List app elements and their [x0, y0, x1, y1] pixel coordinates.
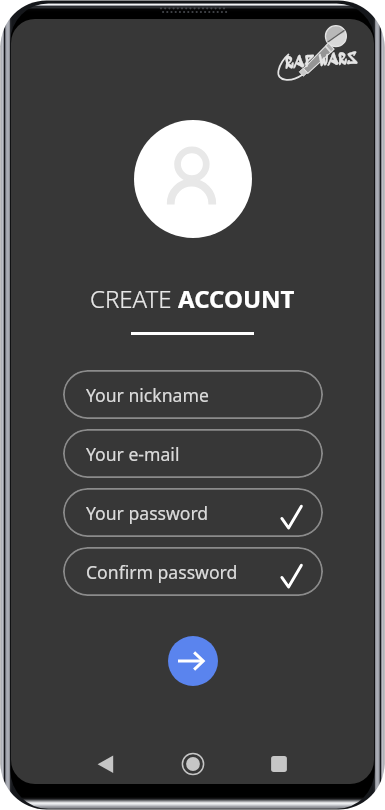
staticText: Your e-mail: [86, 442, 180, 466]
button[interactable]: Confirm password: [63, 547, 323, 596]
staticText: Your password: [86, 501, 209, 525]
staticText: RAP WARS: [284, 48, 359, 74]
button[interactable]: Recents: [257, 742, 301, 784]
button[interactable]: Home: [171, 742, 215, 784]
button[interactable]: Rap Wars logo: [273, 20, 365, 88]
staticText: ACCOUNT: [178, 282, 295, 315]
button[interactable]: Your nickname: [63, 370, 323, 419]
staticText: Confirm password: [86, 560, 238, 584]
button[interactable]: Profile photo: [134, 120, 252, 238]
button[interactable]: Your e-mail: [63, 429, 323, 478]
staticText: CREATE: [90, 282, 178, 315]
button[interactable]: Continue: [168, 636, 218, 686]
button[interactable]: Back: [84, 742, 128, 784]
staticText: Your nickname: [86, 383, 209, 407]
button[interactable]: Your password: [63, 488, 323, 537]
